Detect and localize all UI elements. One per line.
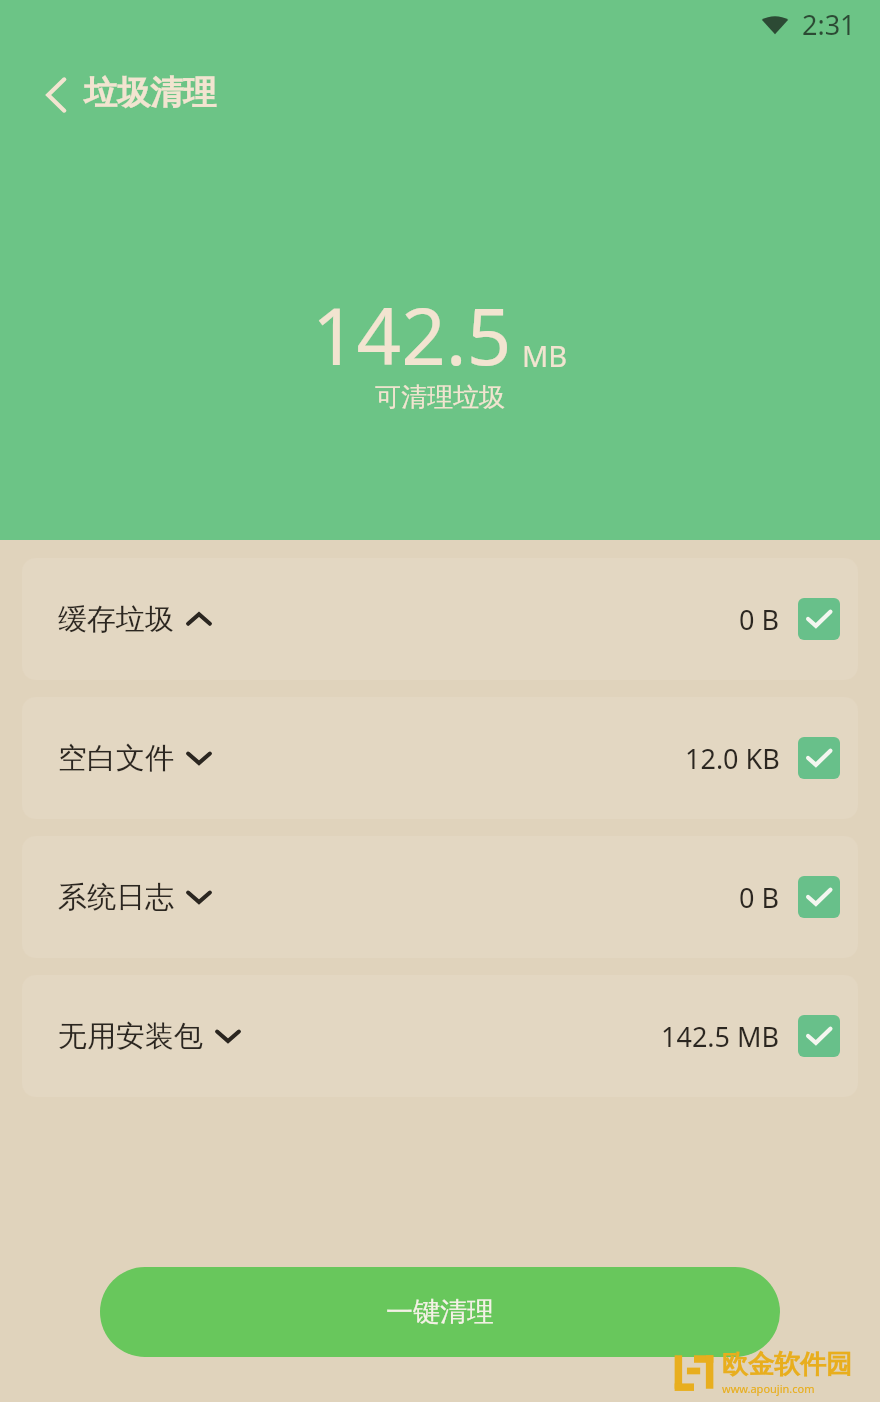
button[interactable]: 一键清理 — [100, 1267, 780, 1357]
button[interactable]: Selected — [798, 1015, 840, 1057]
button[interactable]: Selected — [798, 598, 840, 640]
staticText: 缓存垃圾 — [58, 601, 174, 638]
staticText: 欧金软件园 — [722, 1348, 852, 1381]
button[interactable]: Selected — [798, 876, 840, 918]
staticText: 0 B — [739, 879, 780, 916]
staticText: MB — [522, 336, 568, 375]
staticText: 系统日志 — [58, 879, 174, 916]
staticText: www.apoujin.com — [722, 1381, 815, 1396]
staticText: 空白文件 — [58, 740, 174, 777]
staticText: 12.0 KB — [685, 740, 780, 777]
staticText: 无用安装包 — [58, 1018, 203, 1055]
staticText: 142.5 — [312, 282, 512, 388]
button[interactable]: 空白文件 — [22, 697, 858, 819]
staticText: 142.5 MB — [661, 1018, 780, 1055]
staticText: 2:31 — [802, 6, 856, 43]
button[interactable]: 无用安装包 — [22, 975, 858, 1097]
staticText: 0 B — [739, 601, 780, 638]
button[interactable]: Back — [28, 66, 86, 124]
button[interactable]: 缓存垃圾 — [22, 558, 858, 680]
button[interactable]: Selected — [798, 737, 840, 779]
button[interactable]: 系统日志 — [22, 836, 858, 958]
staticText: 可清理垃圾 — [375, 381, 505, 414]
staticText: 垃圾清理 — [84, 72, 216, 114]
staticText: 一键清理 — [386, 1295, 494, 1329]
